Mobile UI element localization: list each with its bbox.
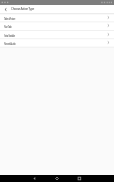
button[interactable]: Recent apps (68, 175, 114, 182)
staticText: Choose Action Type (11, 7, 34, 11)
button[interactable]: Set a Variable (0, 30, 114, 38)
staticText: Run Task (4, 25, 107, 29)
staticText: Record Audio (4, 42, 107, 46)
button[interactable]: Back (0, 175, 45, 182)
button[interactable]: Record Audio (0, 38, 114, 46)
staticText: Set a Variable (4, 34, 107, 38)
button[interactable]: Run Task (0, 21, 114, 30)
button[interactable]: Home (45, 175, 68, 182)
button[interactable]: Take a Picture (0, 13, 114, 21)
button[interactable]: Navigate up (0, 5, 11, 13)
staticText: Take a Picture (4, 17, 107, 21)
